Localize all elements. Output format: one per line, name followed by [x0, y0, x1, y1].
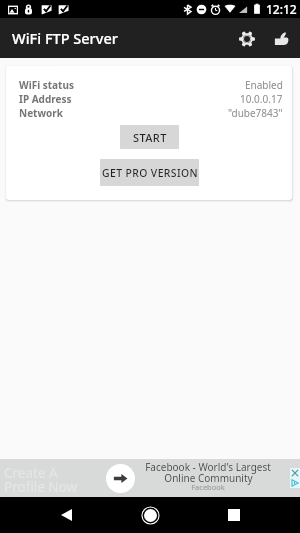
button[interactable]: Rate app	[264, 21, 299, 56]
staticText: Online Community	[164, 471, 253, 485]
button[interactable]: Recent apps	[210, 497, 258, 533]
button[interactable]: GET PRO VERSION	[100, 159, 199, 186]
button[interactable]: Back	[42, 497, 90, 533]
button[interactable]: Create A	[0, 459, 300, 497]
staticText: "dube7843"	[228, 106, 283, 120]
staticText: WiFi status	[19, 78, 74, 92]
staticText: Facebook	[191, 482, 225, 492]
staticText: 12:12	[266, 1, 297, 17]
staticText: Network	[19, 106, 63, 120]
staticText: Enabled	[245, 78, 283, 92]
staticText: Create A	[4, 464, 58, 482]
staticText: 10.0.0.17	[240, 92, 283, 106]
staticText: IP Address	[19, 92, 72, 106]
staticText: Facebook - World's Largest	[145, 460, 271, 474]
button[interactable]: Settings	[229, 21, 264, 56]
staticText: WiFi FTP Server	[12, 28, 118, 48]
button[interactable]: Close ad	[291, 469, 299, 477]
button[interactable]: Ad choices	[291, 479, 299, 487]
staticText: GET PRO VERSION	[102, 166, 198, 180]
staticText: Profile Now	[4, 478, 78, 496]
staticText: START	[133, 130, 167, 145]
button[interactable]: START	[120, 125, 179, 149]
button[interactable]: Home	[126, 497, 174, 533]
